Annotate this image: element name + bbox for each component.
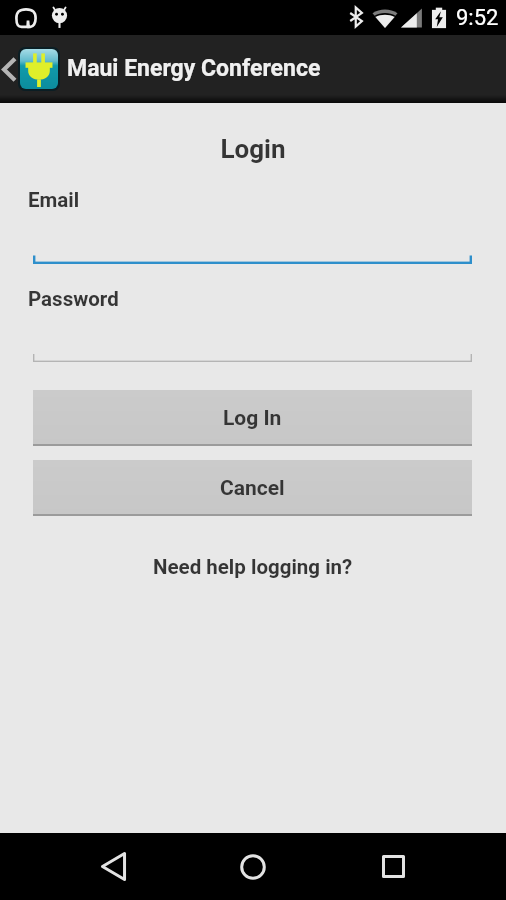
staticText: Password [28, 287, 119, 311]
button[interactable]: Back [78, 833, 148, 900]
button[interactable]: Cancel [33, 460, 472, 516]
staticText: Need help logging in? [153, 555, 353, 579]
staticText: 9:52 [456, 5, 499, 31]
staticText: Maui Energy Conference [67, 55, 321, 82]
staticText: Email [28, 188, 80, 212]
button[interactable]: Recent apps [358, 833, 428, 900]
staticText: Log In [223, 406, 282, 431]
button[interactable]: Navigate up [0, 51, 18, 87]
staticText: Cancel [220, 476, 285, 501]
button[interactable]: Password input field [33, 317, 472, 362]
staticText: Login [0, 134, 506, 164]
button[interactable]: Need help logging in? [149, 553, 357, 581]
button[interactable]: Email input field [33, 218, 472, 264]
button[interactable]: Log In [33, 390, 472, 446]
button[interactable]: Home [218, 833, 288, 900]
